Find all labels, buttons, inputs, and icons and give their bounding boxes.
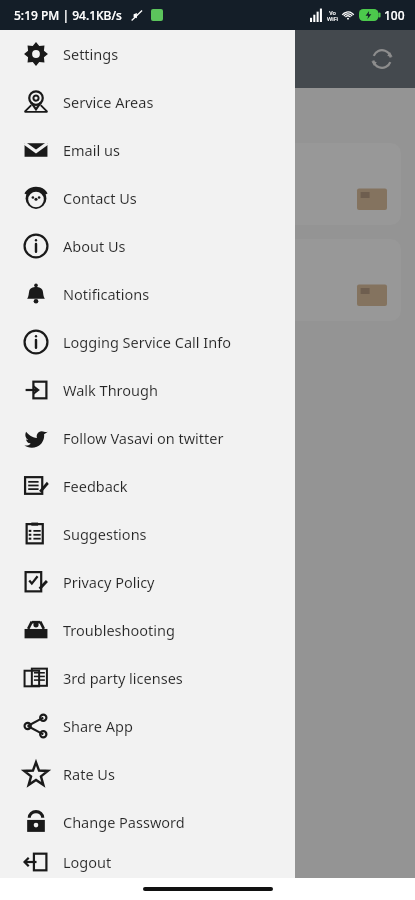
button[interactable]: Troubleshooting bbox=[0, 606, 295, 654]
staticText: Walk Through bbox=[63, 380, 158, 400]
button[interactable]: Delivered bbox=[14, 239, 401, 321]
staticText: 100 bbox=[384, 7, 405, 23]
staticText: For Delivery bbox=[28, 155, 113, 175]
staticText: Notifications bbox=[63, 284, 150, 304]
button[interactable]: Feedback bbox=[0, 462, 295, 510]
staticText: Feedback bbox=[63, 476, 128, 496]
button[interactable]: For Delivery bbox=[14, 143, 401, 225]
staticText: Follow Vasavi on twitter bbox=[63, 428, 224, 448]
staticText: 0 bbox=[28, 179, 39, 205]
button[interactable]: About Us bbox=[0, 222, 295, 270]
staticText: 3rd party licenses bbox=[63, 668, 183, 688]
button[interactable]: Settings bbox=[0, 30, 295, 78]
staticText: About Us bbox=[63, 236, 126, 256]
button[interactable]: Privacy Policy bbox=[0, 558, 295, 606]
staticText: Settings bbox=[63, 44, 119, 64]
staticText: Share App bbox=[63, 716, 133, 736]
staticText: SUMMARY bbox=[18, 98, 143, 131]
button[interactable]: Suggestions bbox=[0, 510, 295, 558]
staticText: Rate Us bbox=[63, 764, 115, 784]
staticText: 0 bbox=[28, 275, 39, 301]
button[interactable]: Refresh bbox=[365, 42, 399, 76]
staticText: Delivered bbox=[28, 251, 95, 271]
button[interactable]: Logout bbox=[0, 846, 295, 878]
staticText: Troubleshooting bbox=[63, 620, 175, 640]
button[interactable]: Share App bbox=[0, 702, 295, 750]
staticText: Service Areas bbox=[63, 92, 154, 112]
button[interactable]: Service Areas bbox=[0, 78, 295, 126]
button[interactable]: 3rd party licenses bbox=[0, 654, 295, 702]
button[interactable]: Rate Us bbox=[0, 750, 295, 798]
button[interactable]: Change Password bbox=[0, 798, 295, 846]
staticText: Logging Service Call Info bbox=[63, 332, 231, 352]
staticText: Vo WiFi bbox=[327, 9, 338, 22]
button[interactable]: Email us bbox=[0, 126, 295, 174]
button[interactable]: Contact Us bbox=[0, 174, 295, 222]
button[interactable]: Notifications bbox=[0, 270, 295, 318]
button[interactable]: Walk Through bbox=[0, 366, 295, 414]
staticText: Contact Us bbox=[63, 188, 137, 208]
staticText: Change Password bbox=[63, 812, 185, 832]
staticText: Suggestions bbox=[63, 524, 147, 544]
staticText: Email us bbox=[63, 140, 120, 160]
staticText: Logout bbox=[63, 852, 112, 872]
button[interactable]: Logging Service Call Info bbox=[0, 318, 295, 366]
button[interactable]: Follow Vasavi on twitter bbox=[0, 414, 295, 462]
staticText: 5:19 PM | 94.1KB/s bbox=[14, 7, 122, 23]
staticText: Privacy Policy bbox=[63, 572, 155, 592]
